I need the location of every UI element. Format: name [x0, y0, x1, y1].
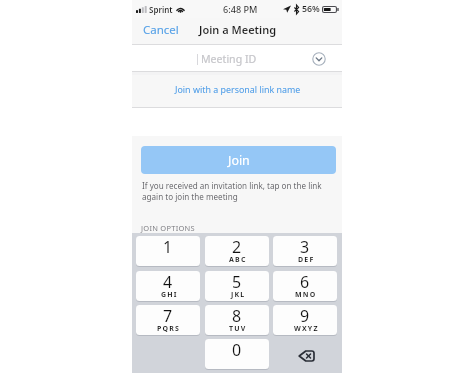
button[interactable]: [136, 271, 200, 301]
staticText: 7: [163, 305, 173, 327]
staticText: Meeting ID: [201, 52, 257, 66]
staticText: JKL: [231, 290, 246, 300]
staticText: 6:48 PM: [223, 3, 258, 15]
staticText: TUV: [229, 324, 247, 334]
staticText: ABC: [229, 255, 247, 265]
button[interactable]: [273, 236, 337, 266]
staticText: 8: [232, 305, 242, 327]
staticText: 0: [232, 339, 242, 361]
staticText: WXYZ: [294, 324, 319, 334]
button[interactable]: [205, 339, 269, 369]
staticText: 1: [163, 236, 173, 258]
button[interactable]: [205, 271, 269, 301]
staticText: Join: [228, 152, 250, 169]
button[interactable]: Join with a personal link name: [132, 75, 342, 107]
staticText: 9: [300, 305, 310, 327]
button[interactable]: Join: [141, 146, 336, 174]
staticText: GHI: [161, 290, 178, 300]
staticText: DEF: [298, 255, 315, 265]
staticText: Join a Meeting: [199, 22, 277, 37]
staticText: Cancel: [143, 22, 179, 38]
staticText: 5: [232, 271, 242, 293]
staticText: 3: [300, 236, 310, 258]
staticText: Sprint: [149, 4, 173, 15]
button[interactable]: [273, 271, 337, 301]
button[interactable]: [273, 305, 337, 335]
button[interactable]: Cancel: [132, 19, 189, 45]
staticText: JOIN OPTIONS: [141, 223, 195, 233]
button[interactable]: Show meeting list: [309, 49, 329, 69]
staticText: Join with a personal link name: [175, 83, 301, 95]
button[interactable]: Delete: [273, 339, 337, 369]
staticText: 2: [232, 236, 242, 258]
staticText: 56%: [302, 3, 320, 15]
staticText: 6: [300, 271, 310, 293]
staticText: If you received an invitation link, tap …: [142, 180, 322, 202]
staticText: MNO: [295, 290, 317, 300]
button[interactable]: [205, 305, 269, 335]
button[interactable]: Meeting ID: [132, 45, 342, 72]
staticText: 4: [163, 271, 173, 293]
button[interactable]: [136, 236, 200, 266]
button[interactable]: [205, 236, 269, 266]
staticText: PQRS: [157, 324, 181, 334]
button[interactable]: [136, 305, 200, 335]
